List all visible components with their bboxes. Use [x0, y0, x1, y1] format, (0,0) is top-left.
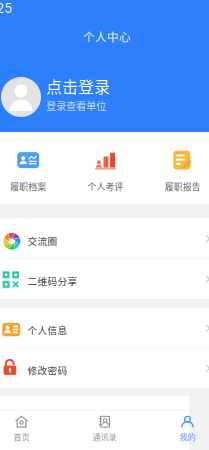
- staticText: 个人考评: [87, 180, 123, 193]
- staticText: 首页: [13, 431, 29, 442]
- button[interactable]: 履职档案: [0, 150, 67, 193]
- staticText: 25: [0, 1, 12, 16]
- staticText: 点击登录: [46, 74, 110, 98]
- button[interactable]: 修改密码: [0, 348, 209, 388]
- staticText: 我的: [179, 431, 195, 442]
- button[interactable]: 二维码分享: [0, 259, 209, 299]
- button[interactable]: 点击登录: [0, 77, 209, 125]
- button[interactable]: 首页: [0, 416, 63, 442]
- button[interactable]: 个人考评: [67, 150, 144, 193]
- button[interactable]: 交流圈: [0, 219, 209, 259]
- staticText: 通讯录: [92, 431, 116, 442]
- staticText: 履职档案: [10, 180, 46, 193]
- staticText: 登录查看单位: [46, 98, 106, 113]
- staticText: 修改密码: [28, 363, 68, 377]
- button[interactable]: 个人信息: [0, 308, 209, 348]
- staticText: 个人中心: [83, 28, 131, 45]
- button[interactable]: 通讯录: [63, 416, 146, 442]
- button[interactable]: 我的: [146, 416, 209, 442]
- staticText: 二维码分享: [28, 274, 78, 288]
- staticText: 个人信息: [28, 323, 68, 337]
- staticText: 交流圈: [28, 234, 58, 247]
- button[interactable]: 履职报告: [144, 150, 209, 193]
- staticText: 履职报告: [165, 180, 201, 193]
